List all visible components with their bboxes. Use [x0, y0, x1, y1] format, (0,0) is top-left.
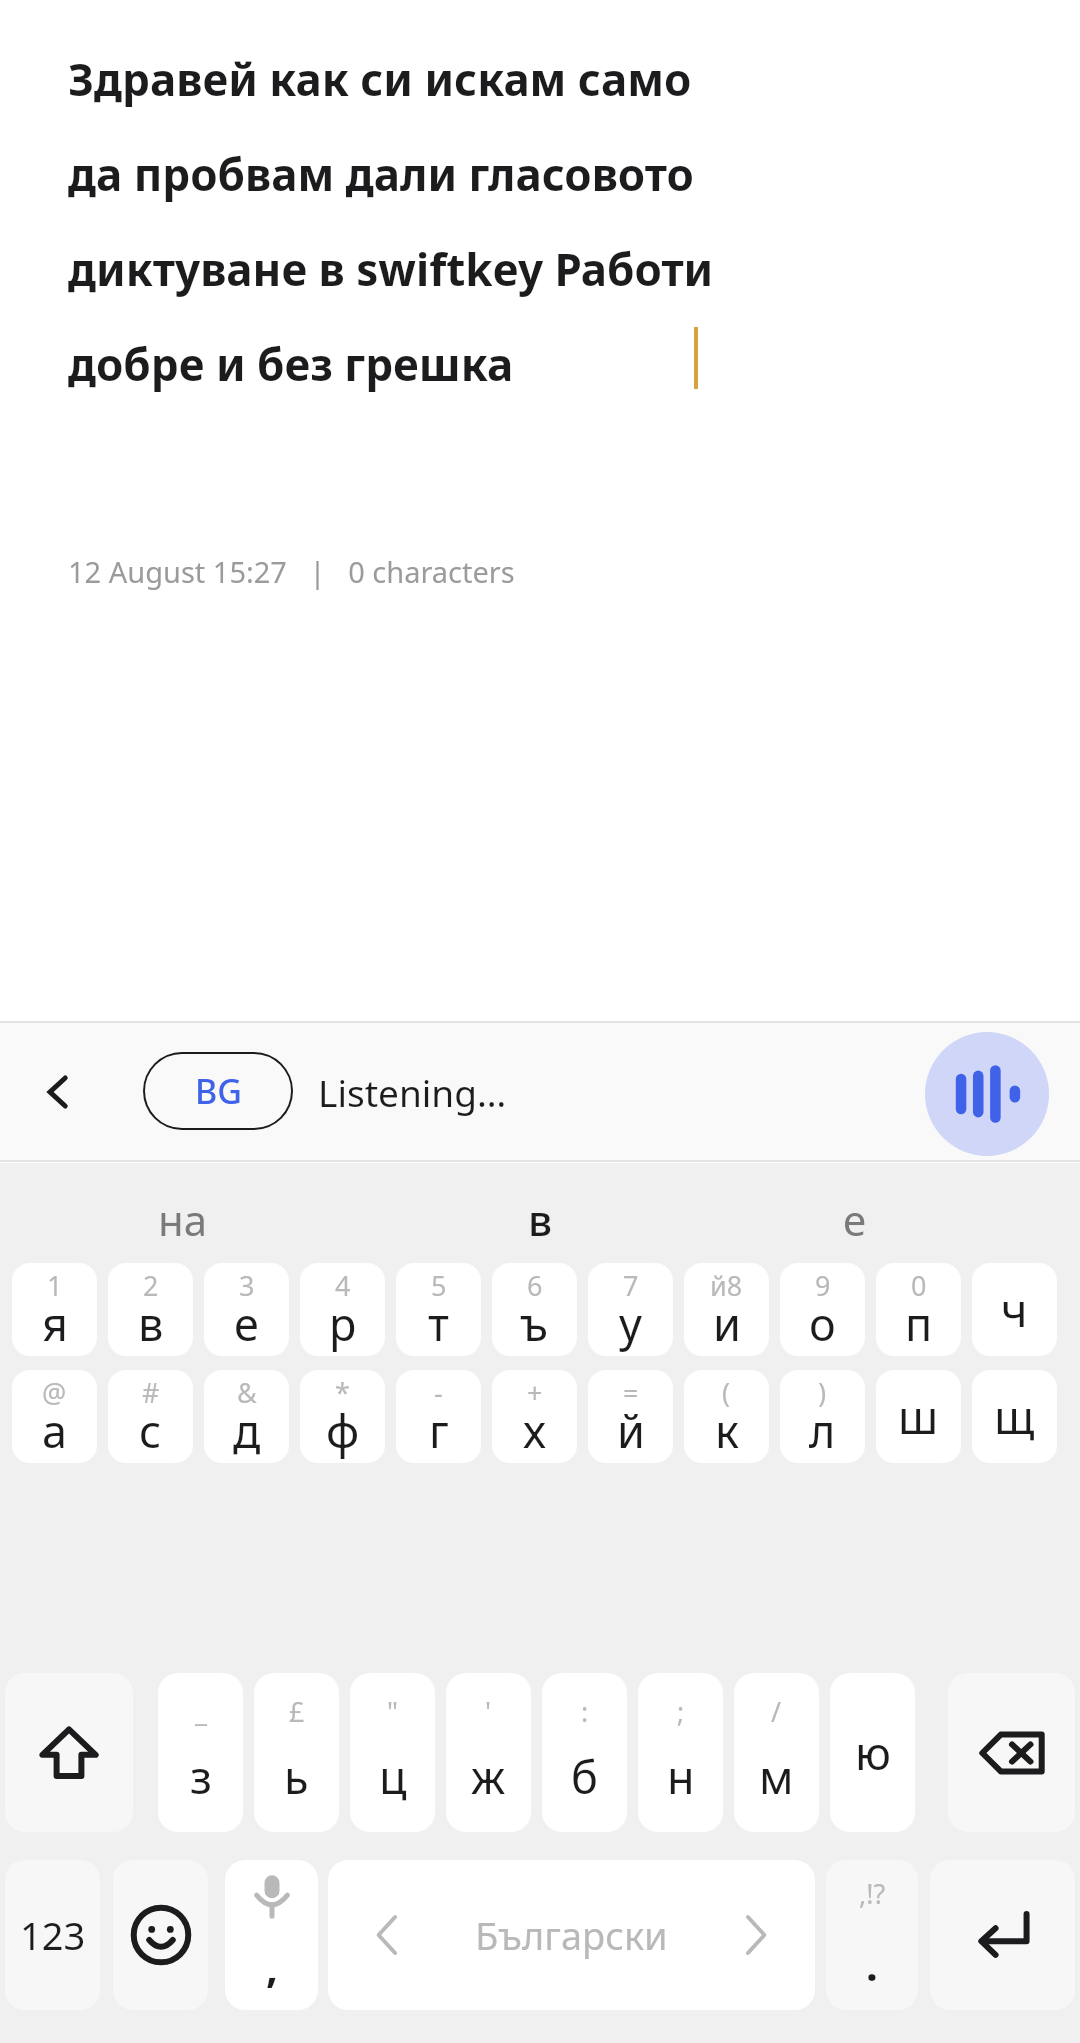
staticText: р: [329, 1293, 357, 1354]
button[interactable]: 6: [492, 1263, 577, 1356]
button[interactable]: £: [254, 1673, 339, 1832]
staticText: е: [234, 1293, 259, 1354]
button[interactable]: ): [780, 1370, 865, 1463]
staticText: г: [429, 1400, 449, 1461]
staticText: ): [818, 1374, 827, 1411]
button[interactable]: е: [715, 1175, 995, 1263]
staticText: ф: [326, 1400, 360, 1461]
staticText: 9: [815, 1267, 831, 1304]
button[interactable]: -: [396, 1370, 481, 1463]
staticText: и: [713, 1293, 741, 1354]
staticText: #: [142, 1374, 160, 1411]
staticText: диктуване в swiftkey Работи: [68, 239, 714, 299]
button[interactable]: _: [158, 1673, 243, 1832]
staticText: с: [139, 1400, 162, 1461]
staticText: х: [523, 1400, 546, 1461]
staticText: _: [195, 1693, 207, 1730]
button[interactable]: Shift: [5, 1673, 133, 1832]
staticText: ": [387, 1693, 399, 1730]
button[interactable]: 1: [12, 1263, 97, 1356]
staticText: ,!?: [859, 1875, 886, 1912]
button[interactable]: (: [684, 1370, 769, 1463]
staticText: 6: [527, 1267, 543, 1304]
button[interactable]: ;: [638, 1673, 723, 1832]
staticText: ш: [898, 1386, 939, 1447]
button[interactable]: 123: [5, 1860, 100, 2010]
staticText: &: [237, 1374, 257, 1411]
button[interactable]: 7: [588, 1263, 673, 1356]
button[interactable]: 3: [204, 1263, 289, 1356]
button[interactable]: щ: [972, 1370, 1057, 1463]
staticText: ж: [471, 1746, 506, 1807]
staticText: 7: [623, 1267, 639, 1304]
staticText: 123: [20, 1909, 86, 1961]
button[interactable]: Backspace: [948, 1673, 1075, 1832]
button[interactable]: @: [12, 1370, 97, 1463]
button[interactable]: Space: [328, 1860, 815, 2010]
button[interactable]: *: [300, 1370, 385, 1463]
button[interactable]: +: [492, 1370, 577, 1463]
button[interactable]: Voice input: [225, 1860, 318, 2010]
staticText: щ: [994, 1386, 1035, 1447]
staticText: 5: [431, 1267, 447, 1304]
button[interactable]: 2: [108, 1263, 193, 1356]
staticText: 2: [143, 1267, 159, 1304]
staticText: ,: [266, 1938, 278, 1995]
staticText: 12 August 15:27 | 0 characters: [68, 552, 515, 591]
button[interactable]: #: [108, 1370, 193, 1463]
button[interactable]: Back: [22, 1056, 94, 1128]
staticText: о: [809, 1293, 836, 1354]
staticText: 3: [239, 1267, 255, 1304]
button[interactable]: =: [588, 1370, 673, 1463]
staticText: на: [158, 1191, 208, 1248]
staticText: да пробвам дали гласовото: [68, 144, 694, 204]
staticText: з: [190, 1746, 212, 1807]
button[interactable]: 9: [780, 1263, 865, 1356]
staticText: BG: [195, 1068, 242, 1114]
button[interactable]: Emoji: [113, 1860, 208, 2010]
staticText: я: [42, 1293, 68, 1354]
staticText: /: [771, 1693, 782, 1730]
button[interactable]: /: [734, 1673, 819, 1832]
staticText: :: [581, 1693, 589, 1730]
button[interactable]: ': [446, 1673, 531, 1832]
staticText: б: [571, 1746, 598, 1807]
staticText: ц: [379, 1746, 407, 1807]
staticText: в: [528, 1191, 553, 1248]
staticText: .: [866, 1936, 878, 1993]
staticText: й8: [710, 1267, 743, 1304]
staticText: ъ: [520, 1293, 549, 1354]
staticText: ;: [677, 1693, 685, 1730]
staticText: ч: [1001, 1279, 1028, 1340]
button[interactable]: ": [350, 1673, 435, 1832]
staticText: в: [138, 1293, 164, 1354]
staticText: т: [428, 1293, 449, 1354]
button[interactable]: 4: [300, 1263, 385, 1356]
button[interactable]: 5: [396, 1263, 481, 1356]
button[interactable]: &: [204, 1370, 289, 1463]
staticText: ю: [855, 1722, 891, 1783]
button[interactable]: ю: [830, 1673, 915, 1832]
button[interactable]: BG: [143, 1052, 293, 1130]
staticText: а: [42, 1400, 68, 1461]
button[interactable]: й8: [684, 1263, 769, 1356]
button[interactable]: 0: [876, 1263, 961, 1356]
staticText: л: [809, 1400, 836, 1461]
staticText: 1: [47, 1267, 63, 1304]
button[interactable]: в: [400, 1175, 680, 1263]
staticText: +: [527, 1374, 543, 1411]
staticText: добре и без грешка: [68, 334, 514, 394]
button[interactable]: Enter: [930, 1860, 1075, 2010]
button[interactable]: ш: [876, 1370, 961, 1463]
button[interactable]: Stop voice input: [925, 1032, 1049, 1156]
button[interactable]: ч: [972, 1263, 1057, 1356]
staticText: Български: [475, 1909, 668, 1961]
button[interactable]: ,!?: [826, 1860, 918, 2010]
button[interactable]: :: [542, 1673, 627, 1832]
staticText: к: [715, 1400, 739, 1461]
button[interactable]: на: [43, 1175, 323, 1263]
staticText: м: [759, 1746, 794, 1807]
staticText: у: [619, 1293, 642, 1354]
staticText: (: [722, 1374, 731, 1411]
staticText: 0: [911, 1267, 927, 1304]
